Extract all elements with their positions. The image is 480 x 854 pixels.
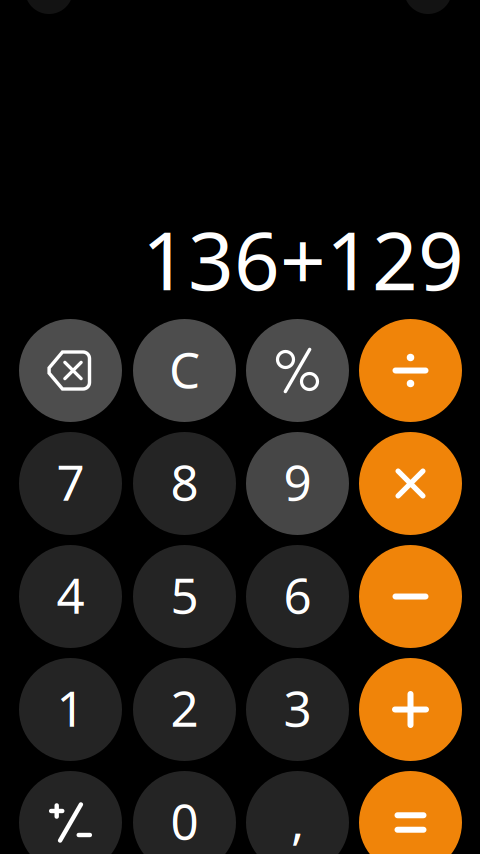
staticText: 136+129 bbox=[142, 206, 464, 312]
button[interactable]: Delete bbox=[19, 319, 122, 422]
button[interactable]: Minus bbox=[359, 545, 462, 648]
staticText: 9 bbox=[283, 449, 311, 514]
staticText: 6 bbox=[283, 562, 311, 627]
button[interactable]: 0 bbox=[133, 771, 236, 854]
button[interactable]: , bbox=[246, 771, 349, 854]
button[interactable]: 3 bbox=[246, 658, 349, 761]
staticText: 1 bbox=[56, 675, 84, 740]
button[interactable]: 1 bbox=[19, 658, 122, 761]
button[interactable]: 4 bbox=[19, 545, 122, 648]
button[interactable]: 6 bbox=[246, 545, 349, 648]
staticText: 4 bbox=[56, 562, 84, 627]
button[interactable]: Plus bbox=[359, 658, 462, 761]
staticText: 7 bbox=[56, 449, 84, 514]
button[interactable]: Divide bbox=[359, 319, 462, 422]
button[interactable]: Plus minus bbox=[19, 771, 122, 854]
staticText: 0 bbox=[170, 788, 198, 853]
button[interactable]: Equals bbox=[359, 771, 462, 854]
staticText: 8 bbox=[170, 449, 198, 514]
button[interactable]: 9 bbox=[246, 432, 349, 535]
button[interactable]: 2 bbox=[133, 658, 236, 761]
staticText: C bbox=[169, 336, 200, 402]
button[interactable]: Multiply bbox=[359, 432, 462, 535]
staticText: 2 bbox=[170, 675, 198, 740]
staticText: 5 bbox=[170, 562, 198, 627]
button[interactable]: 5 bbox=[133, 545, 236, 648]
button[interactable]: Percent bbox=[246, 319, 349, 422]
staticText: 3 bbox=[283, 675, 311, 740]
staticText: , bbox=[291, 788, 304, 853]
button[interactable]: C bbox=[133, 319, 236, 422]
button[interactable]: 8 bbox=[133, 432, 236, 535]
button[interactable]: 7 bbox=[19, 432, 122, 535]
